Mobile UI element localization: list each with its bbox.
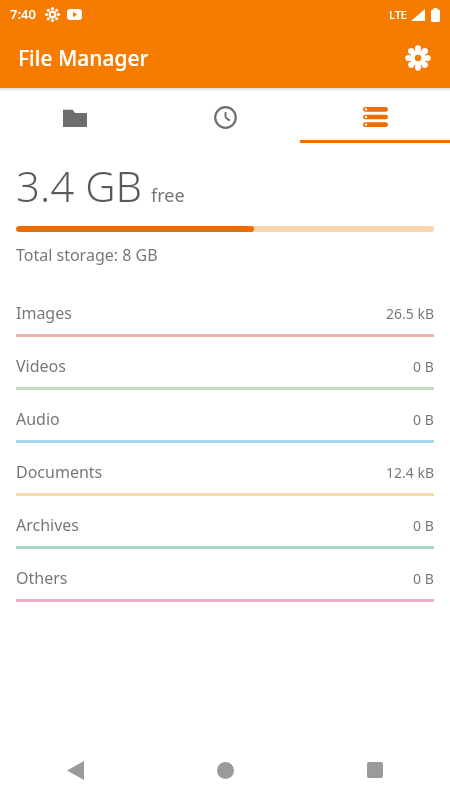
staticText: Total storage: 8 GB [16, 244, 158, 266]
button[interactable]: Home [150, 740, 300, 800]
button[interactable]: Images [0, 284, 450, 337]
button[interactable]: Storage [300, 91, 450, 143]
button[interactable]: Settings [394, 34, 442, 82]
staticText: 7:40 [10, 5, 36, 23]
staticText: Images [16, 302, 72, 324]
button[interactable]: Audio [0, 390, 450, 443]
staticText: 0 B [413, 516, 434, 535]
button[interactable]: Others [0, 549, 450, 602]
staticText: 3.4 GB [16, 157, 143, 214]
button[interactable]: Documents [0, 443, 450, 496]
button[interactable]: Recent [150, 91, 300, 143]
staticText: Videos [16, 355, 66, 377]
staticText: Archives [16, 514, 80, 536]
staticText: 12.4 kB [386, 463, 434, 482]
staticText: LTE [389, 7, 407, 22]
staticText: File Manager [18, 44, 149, 73]
button[interactable]: Videos [0, 337, 450, 390]
button[interactable]: Files [0, 91, 150, 143]
staticText: free [151, 183, 185, 208]
button[interactable]: Archives [0, 496, 450, 549]
staticText: Audio [16, 408, 60, 430]
staticText: Others [16, 567, 68, 589]
staticText: 0 B [413, 357, 434, 376]
staticText: 26.5 kB [386, 304, 434, 323]
button[interactable]: Back [0, 740, 150, 800]
staticText: 0 B [413, 410, 434, 429]
staticText: 0 B [413, 569, 434, 588]
button[interactable]: Recent apps [300, 740, 450, 800]
staticText: Documents [16, 461, 103, 483]
